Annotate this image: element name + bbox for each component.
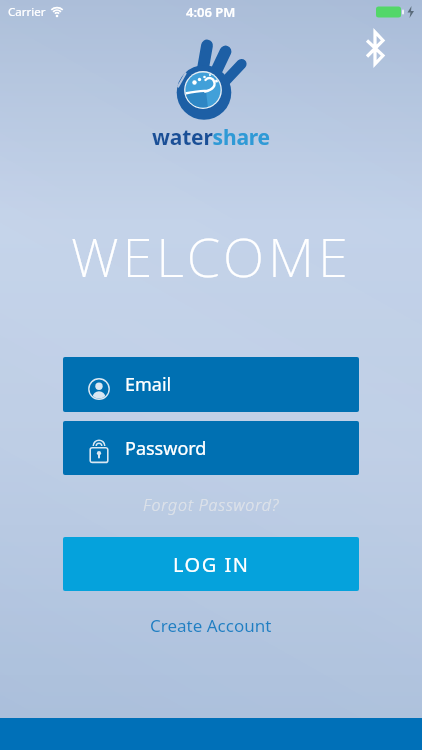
button[interactable]: Forgot Password? (143, 494, 280, 516)
staticText: 4:06 PM (186, 3, 236, 21)
staticText: watershare (152, 123, 270, 152)
button[interactable]: Password (63, 421, 359, 475)
staticText: LOG IN (173, 551, 250, 578)
button[interactable]: Email (63, 357, 359, 412)
staticText: WELCOME (71, 219, 352, 293)
button[interactable]: LOG IN (63, 537, 359, 591)
staticText: Email (125, 372, 172, 397)
staticText: Password (125, 436, 207, 461)
button[interactable]: Create Account (150, 614, 272, 637)
staticText: Carrier (8, 4, 46, 20)
